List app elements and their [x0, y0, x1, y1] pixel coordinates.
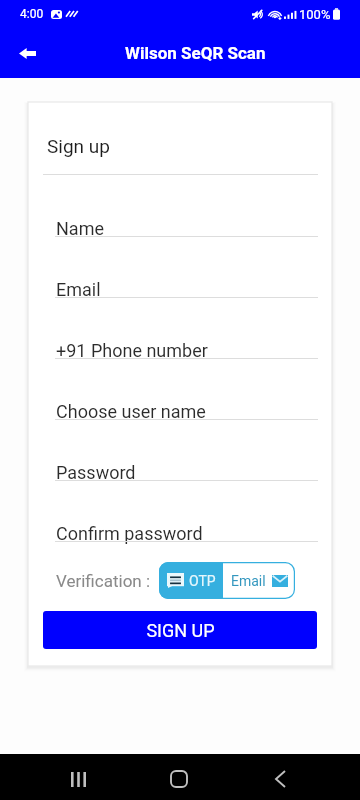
button[interactable]: Back	[11, 37, 43, 69]
staticText: 100%	[299, 7, 331, 22]
staticText: Email	[56, 279, 101, 300]
staticText: SIGN UP	[146, 620, 215, 641]
button[interactable]: Home	[149, 756, 209, 800]
staticText: 4:00	[20, 7, 44, 21]
button[interactable]: Recent apps	[48, 756, 108, 800]
button[interactable]: SIGN UP	[43, 611, 317, 649]
staticText: Name	[56, 218, 104, 239]
staticText: Password	[56, 462, 136, 483]
button[interactable]: OTP	[159, 562, 223, 599]
staticText: OTP	[189, 573, 216, 589]
staticText: +91 Phone number	[56, 340, 208, 361]
staticText: Wilson SeQR Scan	[125, 43, 266, 63]
staticText: Email	[231, 573, 266, 589]
staticText: Choose user name	[56, 401, 206, 422]
button[interactable]: Email	[223, 562, 295, 599]
staticText: Confirm password	[56, 523, 203, 544]
staticText: Sign up	[47, 135, 110, 157]
button[interactable]: Back	[250, 756, 310, 800]
staticText: Verification :	[56, 571, 151, 591]
